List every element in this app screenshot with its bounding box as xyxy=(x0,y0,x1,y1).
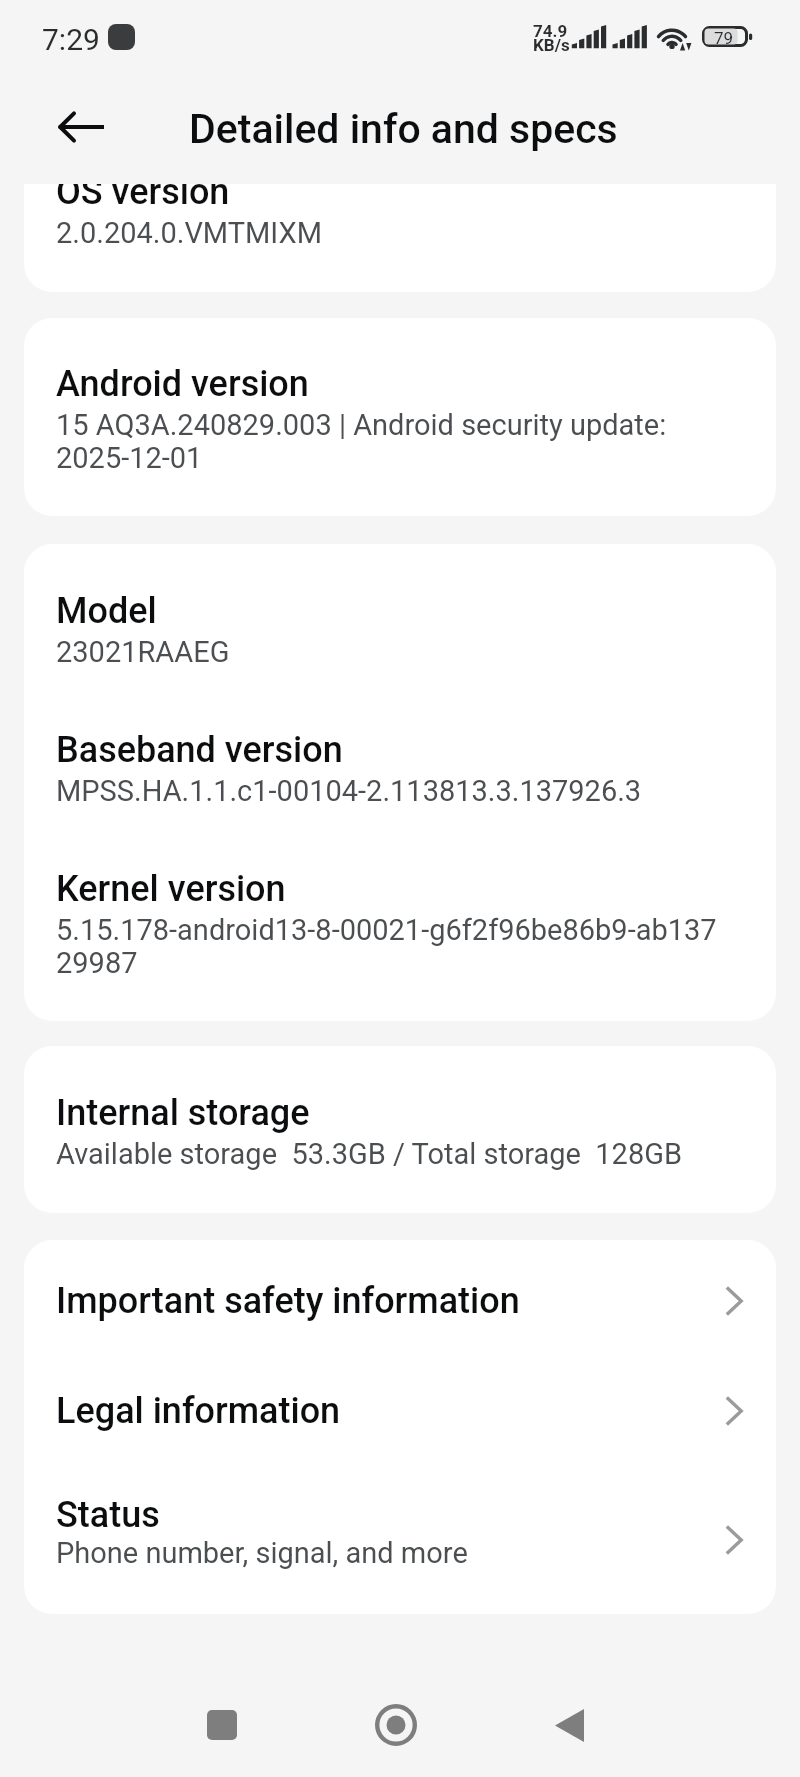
button[interactable]: Android version xyxy=(24,318,776,516)
button[interactable]: Recents xyxy=(180,1683,264,1767)
staticText: Available storage 53.3GB / Total storage… xyxy=(56,1137,683,1171)
staticText: 5.15.178-android13-8-00021-g6f2f96be86b9… xyxy=(56,913,717,980)
staticText: Kernel version xyxy=(56,868,286,910)
staticText: Internal storage xyxy=(56,1092,310,1134)
staticText: 7:29 xyxy=(42,22,100,57)
staticText: MPSS.HA.1.1.c1-00104-2.113813.3.137926.3 xyxy=(56,774,642,808)
button[interactable]: Legal information xyxy=(24,1356,776,1461)
button[interactable]: Back xyxy=(527,1683,611,1767)
staticText: 79 xyxy=(714,28,734,48)
button[interactable]: OS version xyxy=(24,184,776,292)
staticText: Legal information xyxy=(56,1390,341,1432)
staticText: Important safety information xyxy=(56,1280,520,1322)
staticText: 15 AQ3A.240829.003 | Android security up… xyxy=(56,408,742,475)
staticText: Model xyxy=(56,590,157,632)
button[interactable]: Back xyxy=(45,91,117,163)
button[interactable]: Status xyxy=(24,1461,776,1608)
staticText: Status xyxy=(56,1494,160,1536)
button[interactable]: Model xyxy=(24,544,776,1021)
staticText: Detailed info and specs xyxy=(189,105,618,153)
button[interactable]: Important safety information xyxy=(24,1246,776,1356)
staticText: Baseband version xyxy=(56,729,343,771)
staticText: 23021RAAEG xyxy=(56,635,230,669)
staticText: 74.9 xyxy=(533,21,568,41)
staticText: Android version xyxy=(56,363,309,405)
button[interactable]: Internal storage xyxy=(24,1046,776,1213)
staticText: 2.0.204.0.VMTMIXM xyxy=(56,216,322,250)
staticText: OS version xyxy=(56,184,230,213)
button[interactable]: Home xyxy=(354,1683,438,1767)
staticText: KB/s xyxy=(533,35,570,55)
staticText: Phone number, signal, and more xyxy=(56,1536,468,1570)
